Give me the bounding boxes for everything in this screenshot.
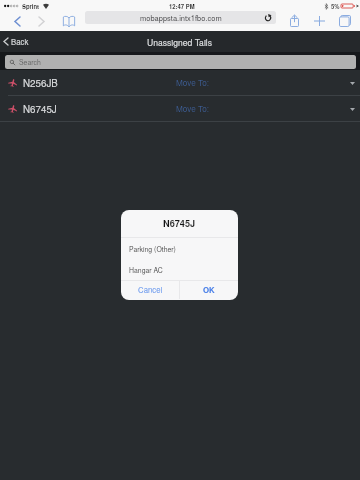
staticText: Unassigned Tails: [147, 36, 213, 48]
button[interactable]: N256JB: [0, 70, 360, 95]
staticText: N256JB: [23, 76, 58, 90]
staticText: Hangar AC: [129, 265, 163, 275]
button[interactable]: OK: [180, 280, 238, 299]
staticText: N6745J: [163, 217, 196, 230]
button[interactable]: mobappsta.intx1fbo.com: [85, 11, 276, 24]
staticText: N6745J: [23, 102, 57, 116]
button[interactable]: Reload: [263, 13, 272, 22]
staticText: OK: [203, 284, 215, 295]
staticText: Back: [11, 36, 29, 47]
button[interactable]: Move To:: [176, 103, 210, 115]
button[interactable]: Search: [5, 55, 356, 69]
button[interactable]: Parking (Other): [121, 238, 238, 259]
button[interactable]: N6745J: [0, 96, 360, 121]
button[interactable]: Expand: [347, 104, 357, 114]
staticText: Search: [19, 57, 41, 67]
button[interactable]: Back: [4, 36, 29, 47]
button[interactable]: Hangar AC: [121, 259, 238, 280]
staticText: Cancel: [138, 284, 163, 295]
staticText: mobappsta.intx1fbo.com: [140, 12, 222, 23]
staticText: Move To:: [176, 77, 210, 89]
button[interactable]: Bookmarks: [60, 11, 78, 31]
staticText: Move To:: [176, 103, 210, 115]
button[interactable]: New tab: [312, 11, 326, 31]
staticText: Parking (Other): [129, 244, 176, 254]
button[interactable]: Tabs: [337, 11, 353, 31]
button[interactable]: Forward: [33, 11, 49, 31]
button[interactable]: Cancel: [121, 280, 179, 299]
button[interactable]: Expand: [347, 78, 357, 88]
button[interactable]: Share: [287, 11, 301, 31]
button[interactable]: Move To:: [176, 77, 210, 89]
staticText: Sprint: [22, 2, 40, 10]
staticText: 12:47 PM: [169, 2, 195, 10]
button[interactable]: Back: [9, 11, 25, 31]
staticText: 5%: [331, 2, 340, 10]
